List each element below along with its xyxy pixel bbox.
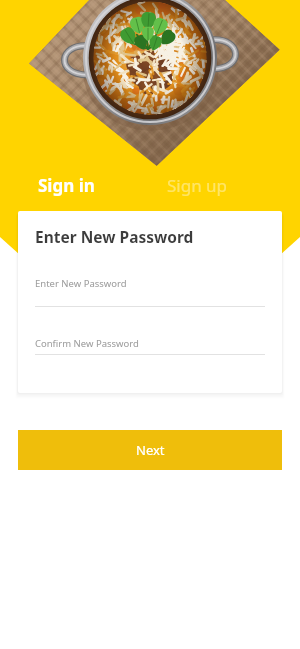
staticText: Enter New Password (35, 277, 127, 290)
button[interactable]: Next (18, 430, 282, 470)
button[interactable]: Sign up (167, 172, 228, 199)
staticText: Enter New Password (35, 226, 194, 247)
button[interactable]: Enter New Password (35, 277, 265, 307)
button[interactable]: Sign in (38, 172, 95, 199)
staticText: Next (136, 441, 165, 459)
staticText: Sign up (167, 174, 228, 197)
staticText: Sign in (38, 174, 95, 197)
button[interactable]: Confirm New Password (35, 337, 265, 355)
staticText: Confirm New Password (35, 337, 139, 350)
